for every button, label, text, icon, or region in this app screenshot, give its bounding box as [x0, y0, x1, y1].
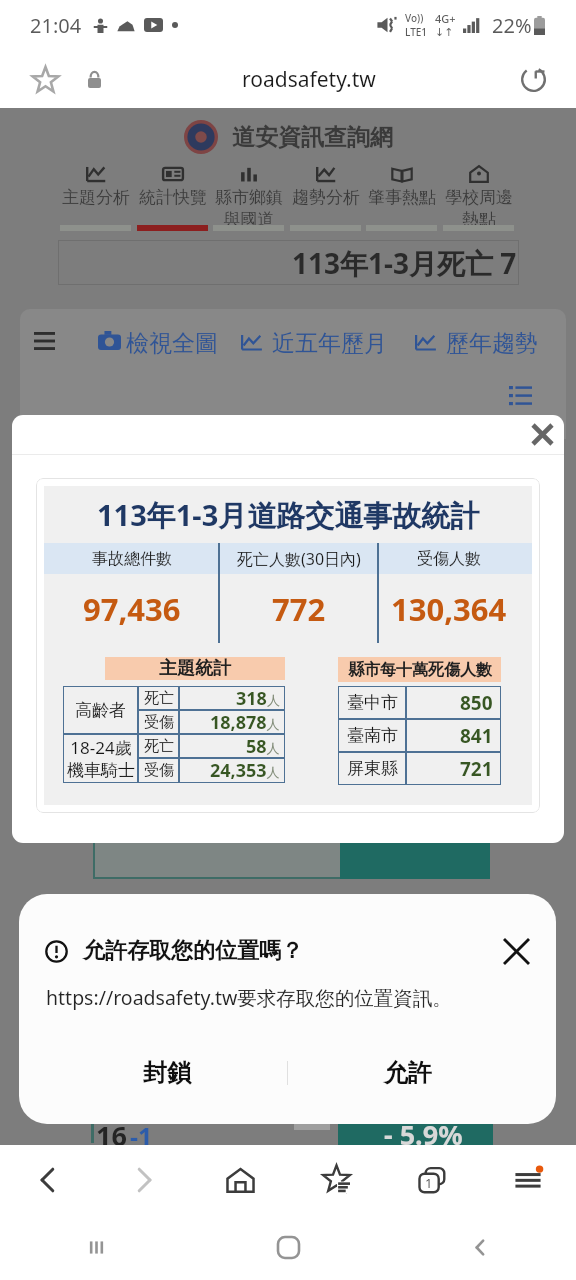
- staticText: 18-24歲 機車騎士: [67, 736, 135, 781]
- staticText: 58人: [246, 734, 280, 758]
- button[interactable]: Bookmarks: [16, 50, 74, 108]
- staticText: 1: [425, 1174, 433, 1192]
- button[interactable]: Back: [384, 1215, 576, 1280]
- button[interactable]: Recents: [0, 1215, 192, 1280]
- staticText: 16: [96, 1117, 127, 1154]
- staticText: 臺中市: [347, 692, 398, 713]
- button[interactable]: Home: [192, 1145, 288, 1215]
- button[interactable]: Tabs: [384, 1145, 480, 1215]
- button[interactable]: Dismiss: [494, 929, 538, 973]
- staticText: - 5.9%: [384, 1116, 463, 1153]
- staticText: 學校周邊 熱點: [445, 187, 513, 230]
- button[interactable]: Home: [192, 1215, 384, 1280]
- staticText: 檢視全圖: [126, 329, 218, 358]
- staticText: 主題統計: [159, 657, 231, 680]
- button[interactable]: Menu: [480, 1145, 576, 1215]
- staticText: 歷年趨勢: [446, 329, 538, 358]
- staticText: 4G+: [435, 11, 456, 26]
- staticText: 肇事熱點: [368, 187, 436, 208]
- staticText: 道安資訊查詢網: [232, 123, 393, 152]
- staticText: 封鎖: [143, 1058, 191, 1088]
- staticText: 841: [460, 723, 493, 749]
- button[interactable]: Back: [0, 1145, 96, 1215]
- staticText: https://roadsafety.tw要求存取您的位置資訊。: [46, 984, 452, 1011]
- staticText: 受傷: [144, 761, 174, 780]
- button[interactable]: roadsafety.tw: [114, 50, 504, 108]
- staticText: 97,436: [83, 588, 181, 630]
- staticText: 24,353人: [210, 758, 280, 783]
- staticText: 近五年歷月: [272, 329, 387, 358]
- staticText: 死亡: [144, 737, 174, 756]
- staticText: 113年1-3月死亡 7: [292, 244, 517, 282]
- staticText: 受傷: [144, 713, 174, 732]
- button[interactable]: Reload: [504, 50, 562, 108]
- staticText: 趨勢分析: [292, 187, 360, 208]
- staticText: roadsafety.tw: [242, 65, 376, 94]
- staticText: 22%: [492, 12, 532, 39]
- staticText: 臺南市: [347, 725, 398, 746]
- staticText: 事故總件數: [92, 549, 172, 569]
- staticText: 130,364: [391, 588, 507, 630]
- staticText: 允許: [384, 1058, 432, 1088]
- staticText: 高齡者: [75, 700, 126, 721]
- staticText: 850: [460, 690, 493, 716]
- staticText: 772: [272, 588, 326, 630]
- staticText: 縣市鄉鎮 與國道: [215, 187, 283, 230]
- staticText: 721: [460, 756, 493, 782]
- staticText: 屏東縣: [347, 758, 398, 779]
- staticText: 死亡: [144, 689, 174, 708]
- button[interactable]: Close: [520, 415, 564, 454]
- button[interactable]: 封鎖: [19, 1021, 287, 1124]
- button[interactable]: Bookmarks: [288, 1145, 384, 1215]
- staticText: -1: [130, 1119, 153, 1153]
- staticText: 受傷人數: [417, 549, 481, 569]
- staticText: Vo)): [405, 11, 424, 25]
- button[interactable]: Forward: [96, 1145, 192, 1215]
- button[interactable]: Site security: [74, 59, 114, 99]
- staticText: 允許存取您的位置嗎？: [83, 937, 303, 965]
- staticText: 113年1-3月道路交通事故統計: [97, 495, 480, 535]
- staticText: 318人: [236, 686, 280, 710]
- staticText: 統計快覽: [139, 187, 207, 208]
- button[interactable]: 允許: [287, 1021, 556, 1124]
- staticText: 縣市每十萬死傷人數: [348, 660, 492, 680]
- staticText: LTE1: [405, 25, 428, 39]
- staticText: 21:04: [30, 12, 82, 39]
- staticText: 主題分析: [62, 187, 130, 208]
- staticText: 死亡人數(30日內): [237, 548, 361, 570]
- staticText: 18,878人: [210, 710, 280, 734]
- staticText: ↓↑: [435, 26, 454, 39]
